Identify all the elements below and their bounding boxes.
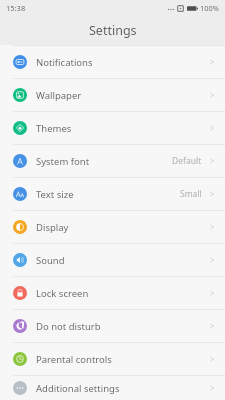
button[interactable]: Notifications xyxy=(0,46,225,78)
button[interactable]: Parental controls xyxy=(0,343,225,375)
other: Do not disturb xyxy=(208,322,216,330)
staticText: Small xyxy=(180,188,202,200)
staticText: Text size xyxy=(36,188,180,201)
other: Lock screen xyxy=(208,289,216,297)
other: Wallpaper xyxy=(208,91,216,99)
staticText: Settings xyxy=(89,22,137,39)
other: Parental controls xyxy=(208,355,216,363)
button[interactable]: Additional settings xyxy=(0,376,225,400)
staticText: Parental controls xyxy=(36,353,208,366)
staticText: Sound xyxy=(36,254,208,267)
other: Notifications xyxy=(208,58,216,66)
button[interactable]: System font xyxy=(0,145,225,177)
staticText: 15:38 xyxy=(6,3,26,13)
other: System font xyxy=(208,157,216,165)
staticText: Lock screen xyxy=(36,287,208,300)
button[interactable]: Sound xyxy=(0,244,225,276)
staticText: Display xyxy=(36,221,208,234)
staticText: Themes xyxy=(36,122,208,135)
button[interactable]: Themes xyxy=(0,112,225,144)
other: Display xyxy=(208,223,216,231)
other: Themes xyxy=(208,124,216,132)
button[interactable]: Do not disturb xyxy=(0,310,225,342)
button[interactable]: Lock screen xyxy=(0,277,225,309)
button[interactable]: Wallpaper xyxy=(0,79,225,111)
other: Additional settings xyxy=(208,384,216,392)
staticText: Wallpaper xyxy=(36,89,208,102)
button[interactable]: Display xyxy=(0,211,225,243)
staticText: Additional settings xyxy=(36,382,208,395)
staticText: Do not disturb xyxy=(36,320,208,333)
staticText: Default xyxy=(172,155,202,167)
button[interactable]: Text size xyxy=(0,178,225,210)
staticText: 100% xyxy=(200,3,220,13)
other: Sound xyxy=(208,256,216,264)
other: Text size xyxy=(208,190,216,198)
staticText: Notifications xyxy=(36,56,208,69)
staticText: System font xyxy=(36,155,172,168)
